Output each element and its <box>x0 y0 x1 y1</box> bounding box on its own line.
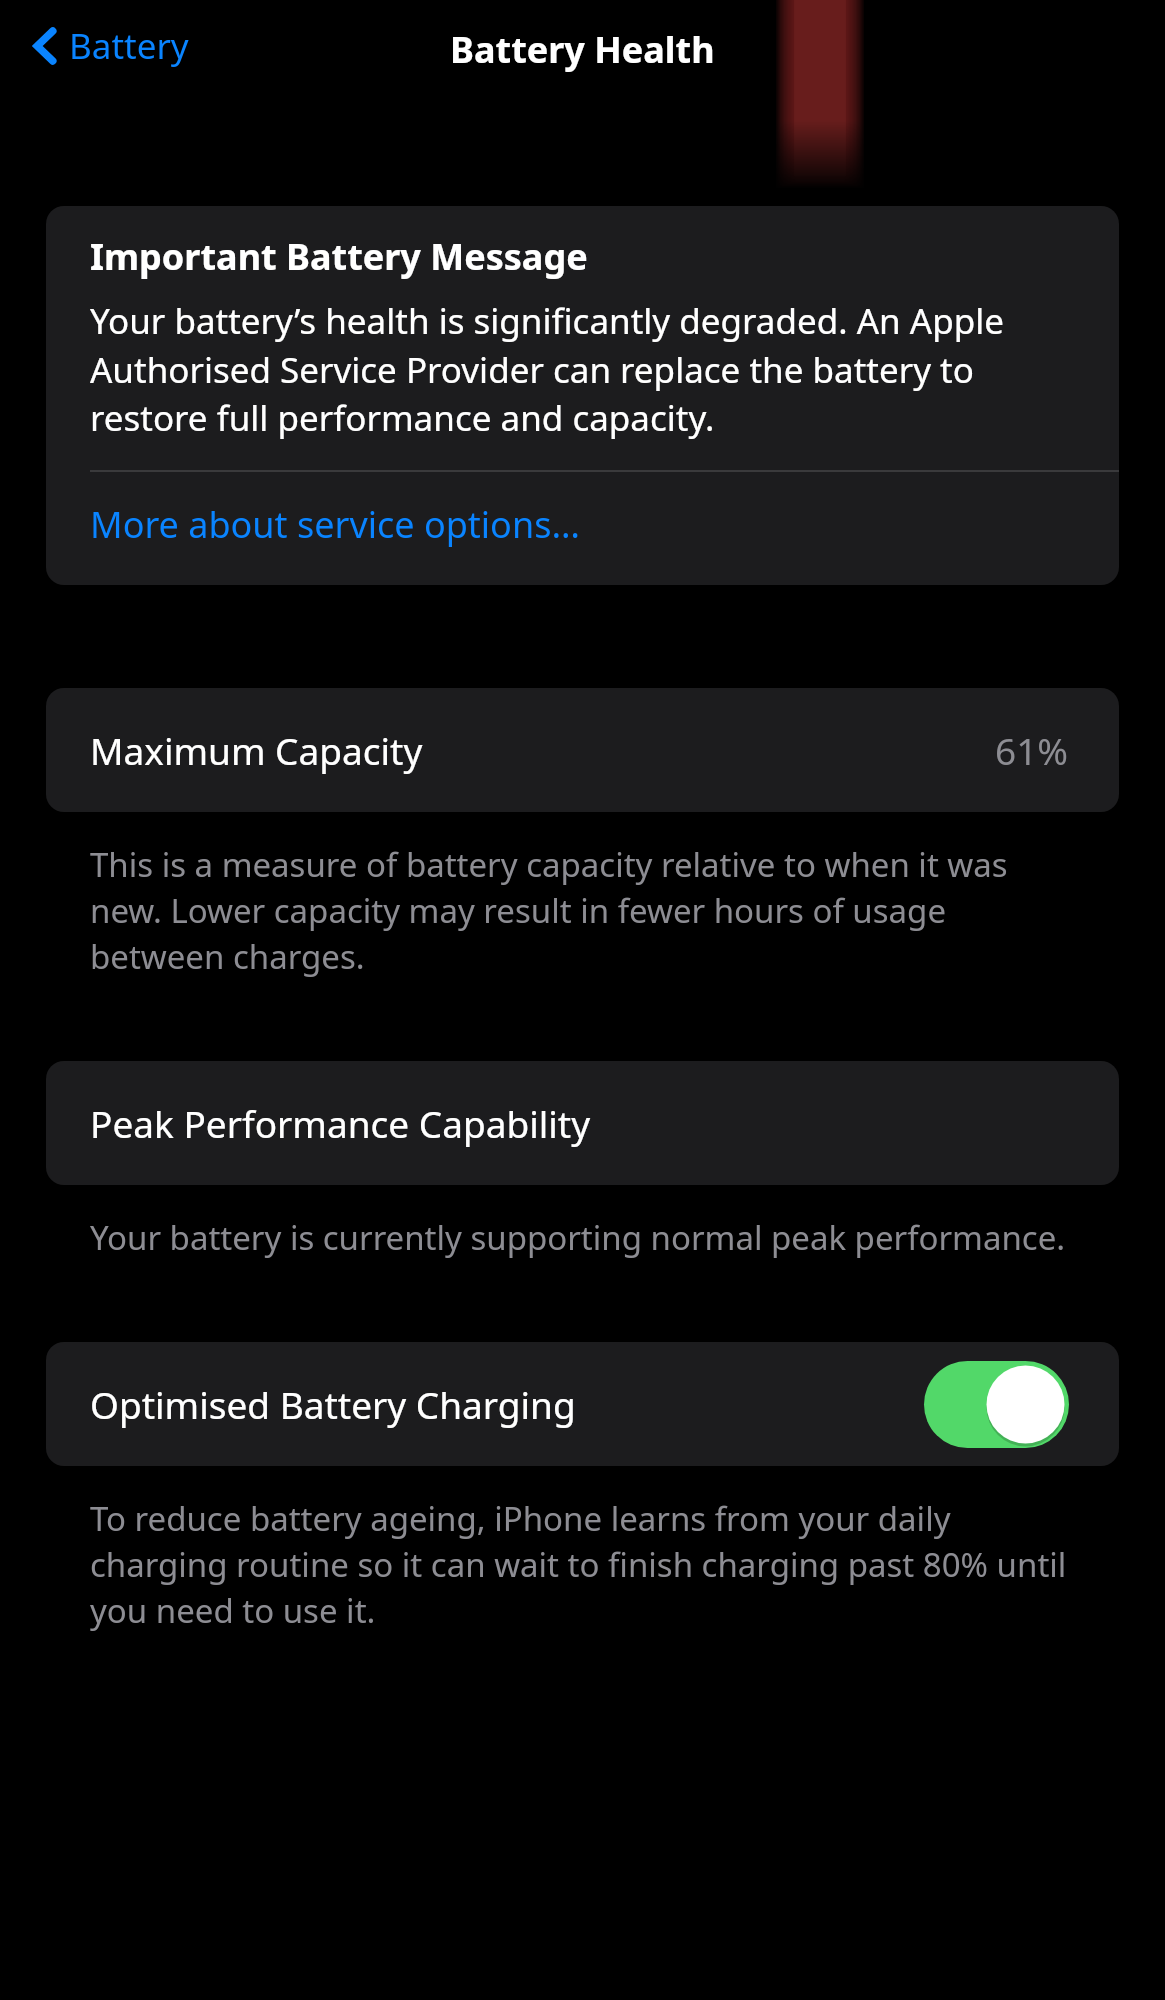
button[interactable]: Maximum Capacity <box>46 688 1119 812</box>
staticText: Battery <box>69 22 189 70</box>
button[interactable]: Optimised Battery Charging <box>46 1342 1119 1466</box>
staticText: Maximum Capacity <box>90 725 423 775</box>
staticText: 61% <box>995 725 1069 775</box>
staticText: Your battery is currently supporting nor… <box>90 1215 1066 1260</box>
staticText: To reduce battery ageing, iPhone learns … <box>90 1496 1085 1633</box>
staticText: Important Battery Message <box>90 232 588 281</box>
staticText: Optimised Battery Charging <box>90 1379 576 1429</box>
button[interactable]: Optimised Battery Charging toggle <box>924 1361 1069 1448</box>
staticText: Peak Performance Capability <box>90 1098 591 1148</box>
staticText: Your battery’s health is significantly d… <box>90 297 1087 441</box>
button[interactable]: Peak Performance Capability <box>46 1061 1119 1185</box>
staticText: More about service options… <box>90 500 580 549</box>
button[interactable]: Battery <box>22 14 199 78</box>
button[interactable]: More about service options… <box>46 472 1119 585</box>
staticText: Battery Health <box>450 25 715 74</box>
staticText: This is a measure of battery capacity re… <box>90 842 1085 979</box>
